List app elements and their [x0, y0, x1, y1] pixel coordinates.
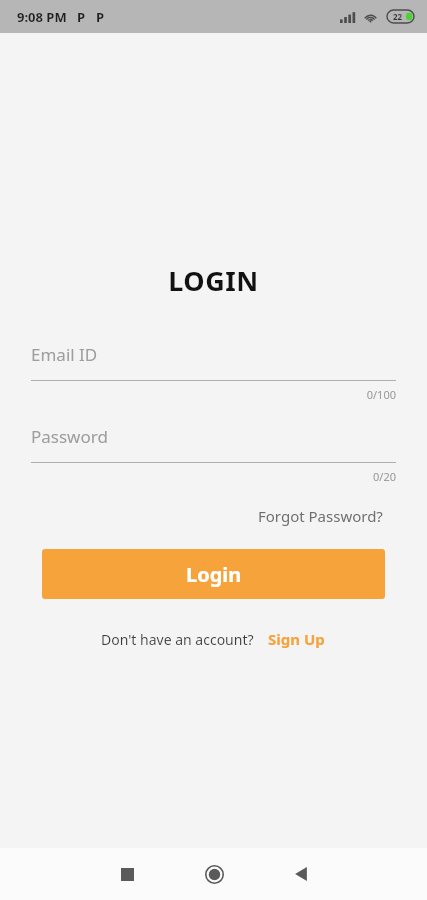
- button[interactable]: Recent apps: [96, 852, 158, 896]
- button[interactable]: Login: [42, 549, 385, 599]
- staticText: 0/20: [31, 469, 396, 484]
- button[interactable]: Email ID: [31, 338, 396, 370]
- staticText: Email ID: [31, 343, 98, 366]
- staticText: 0/100: [31, 387, 396, 402]
- button[interactable]: Home: [183, 852, 245, 896]
- staticText: Login: [186, 561, 242, 588]
- button[interactable]: Sign Up: [266, 626, 327, 652]
- staticText: Password: [31, 425, 108, 448]
- button[interactable]: Password: [31, 420, 396, 452]
- staticText: Forgot Password?: [258, 506, 383, 526]
- button[interactable]: Back: [270, 852, 332, 896]
- staticText: 9:08 PM: [17, 8, 67, 26]
- staticText: Sign Up: [268, 629, 325, 649]
- button[interactable]: Forgot Password?: [256, 502, 385, 530]
- staticText: 22: [393, 11, 403, 22]
- staticText: P: [77, 8, 86, 26]
- staticText: LOGIN: [0, 262, 427, 299]
- staticText: P: [96, 8, 105, 26]
- staticText: Don't have an account?: [101, 630, 254, 649]
